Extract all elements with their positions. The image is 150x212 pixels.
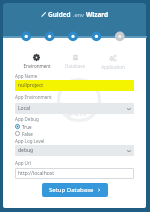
button[interactable]: Environment [17, 54, 56, 69]
other: Application [109, 54, 117, 62]
button[interactable]: http://localhost [15, 168, 134, 179]
staticText: Guided [48, 10, 73, 19]
other: Database [72, 54, 79, 61]
staticText: Wizard [86, 10, 109, 19]
button[interactable]: Setup Database [42, 183, 108, 197]
staticText: Environment [23, 63, 51, 69]
staticText: False [22, 131, 33, 137]
button[interactable]: Local [15, 103, 134, 114]
staticText: Setup Database [49, 186, 94, 194]
staticText: True [22, 124, 32, 130]
staticText: Application [101, 64, 125, 70]
button[interactable]: Database [56, 54, 94, 69]
staticText: nullproject [18, 82, 44, 89]
button[interactable]: Guided [0, 0, 150, 29]
button[interactable]: Application [94, 54, 132, 70]
staticText: debug [18, 147, 34, 154]
staticText: Local [18, 105, 31, 112]
button[interactable]: False [15, 130, 33, 137]
staticText: App Name [15, 73, 38, 79]
staticText: pen [67, 105, 87, 119]
staticText: App Environment [15, 94, 52, 100]
staticText: App Log Level [15, 138, 45, 144]
staticText: App Url [15, 160, 31, 166]
staticText: http://localhost [18, 170, 54, 177]
staticText: .env [73, 11, 86, 18]
button[interactable]: nullproject [15, 80, 134, 91]
button[interactable]: True [15, 123, 32, 130]
staticText: App Debug [15, 116, 39, 122]
staticText: Database [65, 63, 85, 69]
button[interactable]: debug [15, 145, 134, 156]
other: Environment [33, 54, 40, 61]
